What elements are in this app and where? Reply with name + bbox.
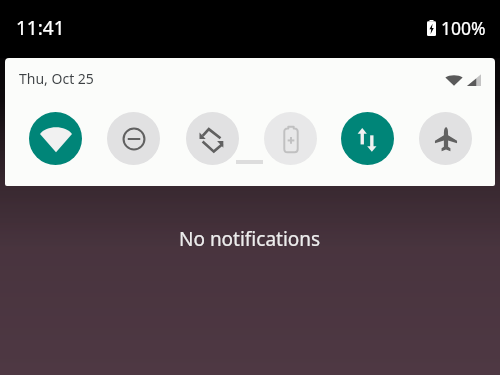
button[interactable]: Do not disturb xyxy=(107,112,160,165)
staticText: 100% xyxy=(441,16,486,40)
staticText: Thu, Oct 25 xyxy=(19,69,94,88)
staticText: 11:41 xyxy=(16,15,65,41)
staticText: No notifications xyxy=(179,226,321,252)
button[interactable]: Mobile data xyxy=(341,112,394,165)
button[interactable]: Wi-Fi xyxy=(29,112,82,165)
button[interactable]: Auto-rotate xyxy=(186,112,239,165)
button[interactable]: Battery Saver xyxy=(264,112,317,165)
button[interactable]: Airplane mode xyxy=(419,112,472,165)
